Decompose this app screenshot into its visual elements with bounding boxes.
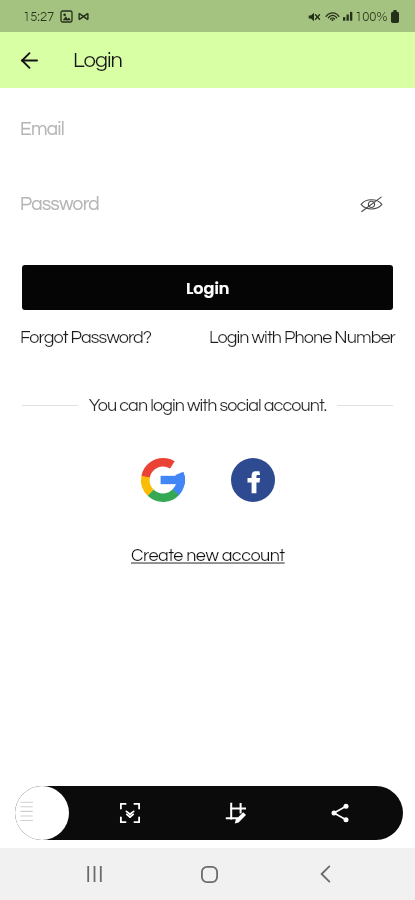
button[interactable]: Sign in with Google	[140, 457, 186, 503]
button[interactable]: Show password	[355, 188, 387, 220]
staticText: Email	[20, 119, 65, 139]
button[interactable]: Email	[0, 88, 415, 170]
button[interactable]: Login with Phone Number	[209, 328, 395, 347]
button[interactable]: Create new account	[131, 546, 285, 565]
button[interactable]: Scroll capture	[109, 792, 151, 834]
button[interactable]: Edit screenshot	[215, 792, 257, 834]
staticText: Forgot Password?	[20, 328, 152, 347]
staticText: Login with Phone Number	[209, 328, 395, 347]
button[interactable]: Back	[301, 850, 349, 898]
button[interactable]: Login	[22, 265, 393, 310]
button[interactable]: Back	[7, 38, 51, 82]
button[interactable]: Forgot Password?	[20, 328, 152, 347]
button[interactable]: Screenshot preview	[15, 786, 69, 840]
staticText: Password	[20, 194, 100, 214]
staticText: Create new account	[131, 546, 285, 565]
staticText: You can login with social account.	[78, 396, 337, 415]
staticText: Login	[186, 277, 230, 299]
staticText: Login	[73, 49, 122, 72]
staticText: 100%	[355, 10, 388, 23]
staticText: 15:27	[23, 10, 55, 23]
button[interactable]: Share	[319, 792, 361, 834]
button[interactable]: Password	[0, 170, 415, 238]
button[interactable]: Home	[185, 850, 233, 898]
button[interactable]: Sign in with Facebook	[230, 457, 276, 503]
button[interactable]: Recents	[70, 850, 118, 898]
